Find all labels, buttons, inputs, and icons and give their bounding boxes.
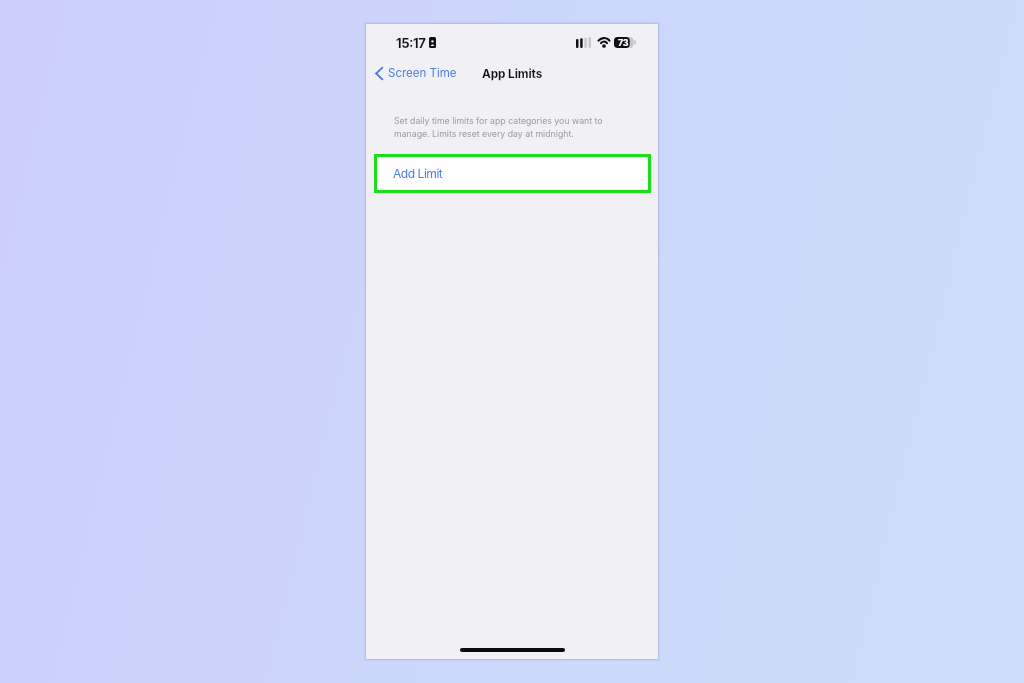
staticText: 73	[618, 37, 629, 48]
staticText: Screen Time	[388, 66, 457, 80]
staticText: Add Limit	[393, 166, 443, 181]
staticText: Set daily time limits for app categories…	[394, 116, 603, 139]
staticText: 15:17	[396, 35, 426, 51]
button[interactable]: Add Limit	[374, 154, 651, 193]
staticText: App Limits	[482, 67, 543, 81]
button[interactable]: Back to Screen Time	[367, 59, 465, 85]
